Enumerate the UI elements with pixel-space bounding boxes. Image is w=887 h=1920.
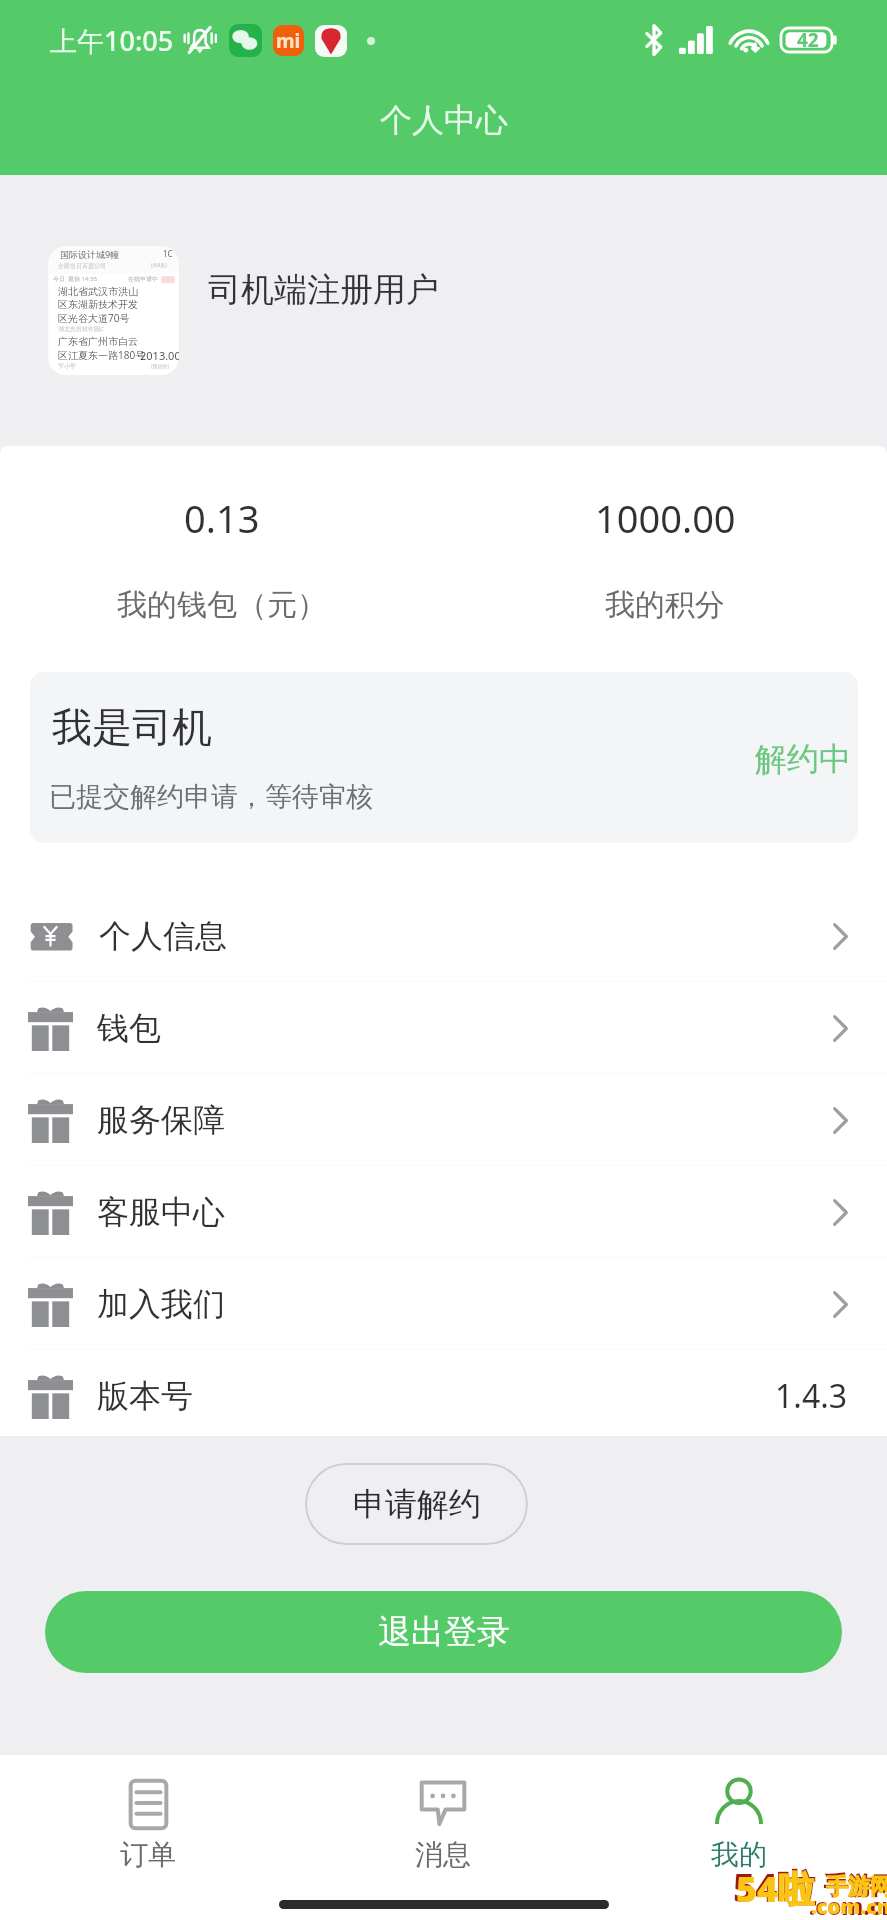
staticText: 个人中心 (380, 100, 508, 140)
staticText: 湖北省武汉市洪山 (58, 285, 138, 298)
staticText: 全部当日百度公司 (58, 262, 106, 270)
staticText: 湖北光谷软件园C (58, 325, 104, 333)
staticText: 我的钱包（元） (117, 586, 327, 624)
staticText: 在线申请中 (128, 275, 158, 283)
staticText: 钱包 (97, 1008, 161, 1048)
staticText: mi (276, 28, 301, 54)
staticText: 54啦 (733, 1861, 816, 1913)
staticText: 54啦 (736, 1864, 815, 1913)
button[interactable]: 消息 (295, 1755, 591, 1895)
button[interactable]: 1000.00 (443, 492, 887, 624)
staticText: 区江夏东一路180号 (58, 348, 146, 362)
staticText: (共8条) (151, 262, 167, 269)
staticText: 区东湖新技术开发 (58, 298, 138, 311)
button[interactable]: 个人信息 (0, 890, 887, 982)
button[interactable]: 客服中心 (0, 1166, 887, 1258)
staticText: 退出登录 (378, 1611, 510, 1653)
staticText: 手游网 (826, 1873, 887, 1901)
staticText: 区光谷大道70号 (58, 311, 130, 325)
staticText: 42 (797, 27, 819, 53)
staticText: 我的积分 (605, 586, 725, 624)
button[interactable]: 版本号 (0, 1350, 887, 1436)
staticText: 客服中心 (97, 1192, 225, 1232)
staticText: 广东省广州市白云 (58, 335, 138, 348)
button[interactable]: 我是司机 (30, 672, 858, 843)
button[interactable]: 退出登录 (45, 1591, 842, 1673)
staticText: (预估价) (151, 363, 170, 370)
button[interactable]: 加入我们 (0, 1258, 887, 1350)
staticText: .com.cn (811, 1893, 887, 1920)
staticText: 手游网 (824, 1871, 887, 1901)
staticText: 解约中 (755, 739, 851, 779)
button[interactable]: 服务保障 (0, 1074, 887, 1166)
staticText: 今日 最快 14:35 (53, 275, 98, 283)
staticText: 消息 (415, 1837, 471, 1872)
staticText: 已提交解约申请，等待审核 (49, 780, 373, 814)
staticText: 0.13 (184, 492, 260, 544)
staticText: 国际设计城9幢 (60, 248, 120, 260)
staticText: 申请解约 (353, 1484, 481, 1524)
staticText: 1.4.3 (775, 1374, 848, 1418)
button[interactable]: 0.13 (0, 492, 443, 624)
button[interactable]: 国际设计城9幢 (0, 175, 887, 446)
staticText: 司机端注册用户 (208, 269, 439, 311)
button[interactable]: 订单 (0, 1755, 295, 1895)
staticText: 版本号 (97, 1376, 193, 1416)
button[interactable]: 申请解约 (305, 1463, 528, 1545)
button[interactable]: 我的 (591, 1755, 887, 1895)
staticText: 节小学 (58, 362, 76, 370)
staticText: 1C (163, 248, 173, 259)
staticText: 2013.00 (140, 348, 179, 363)
staticText: 1000.00 (595, 492, 736, 544)
staticText: 个人信息 (99, 916, 227, 956)
staticText: 上午10:05 (50, 22, 174, 59)
staticText: .com.cn (809, 1891, 887, 1920)
staticText: 服务保障 (97, 1100, 225, 1140)
staticText: 我的 (711, 1837, 767, 1872)
staticText: 我是司机 (52, 702, 212, 752)
staticText: 订单 (120, 1837, 176, 1872)
staticText: 加入我们 (97, 1284, 225, 1324)
button[interactable]: 钱包 (0, 982, 887, 1074)
